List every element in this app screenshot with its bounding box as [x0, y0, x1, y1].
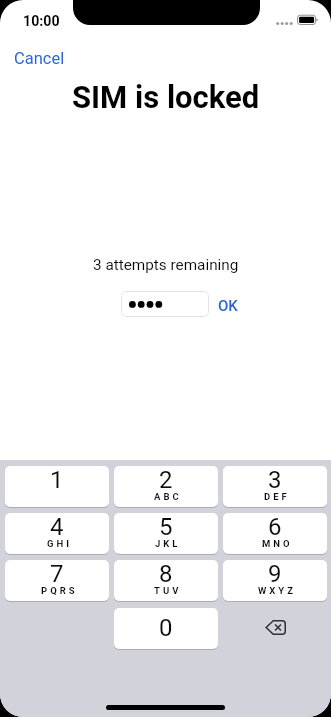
staticText: 1: [50, 466, 64, 494]
staticText: 6: [268, 513, 282, 541]
staticText: 3: [268, 466, 282, 494]
button[interactable]: 7: [5, 560, 109, 601]
button[interactable]: 3: [223, 466, 327, 507]
button[interactable]: 6: [223, 513, 327, 554]
button[interactable]: 5: [114, 513, 218, 554]
staticText: JKL: [155, 538, 181, 549]
staticText: 7: [50, 560, 64, 588]
staticText: DEF: [264, 491, 290, 502]
staticText: PQRS: [41, 585, 78, 596]
button[interactable]: 1: [5, 466, 109, 507]
button[interactable]: 2: [114, 466, 218, 507]
staticText: 3 attempts remaining: [93, 256, 239, 274]
staticText: MNO: [262, 538, 293, 549]
staticText: TUV: [154, 585, 182, 596]
staticText: 0: [159, 614, 173, 642]
button[interactable]: Backspace: [223, 607, 327, 648]
button[interactable]: 4: [5, 513, 109, 554]
button[interactable]: OK: [214, 293, 242, 319]
staticText: 10:00: [23, 13, 60, 30]
staticText: WXYZ: [258, 585, 296, 596]
staticText: 2: [159, 466, 173, 494]
button[interactable]: 9: [223, 560, 327, 601]
staticText: ABC: [154, 491, 182, 502]
staticText: SIM is locked: [72, 79, 260, 115]
staticText: 5: [159, 513, 173, 541]
staticText: 9: [268, 560, 282, 588]
staticText: Cancel: [14, 49, 65, 68]
staticText: 8: [159, 560, 173, 588]
staticText: OK: [218, 297, 238, 315]
staticText: GHI: [47, 538, 72, 549]
staticText: 4: [50, 513, 64, 541]
button[interactable]: 0: [114, 608, 218, 649]
button[interactable]: 8: [114, 560, 218, 601]
button[interactable]: Cancel: [10, 45, 69, 72]
button[interactable]: PIN entry: [121, 291, 209, 317]
